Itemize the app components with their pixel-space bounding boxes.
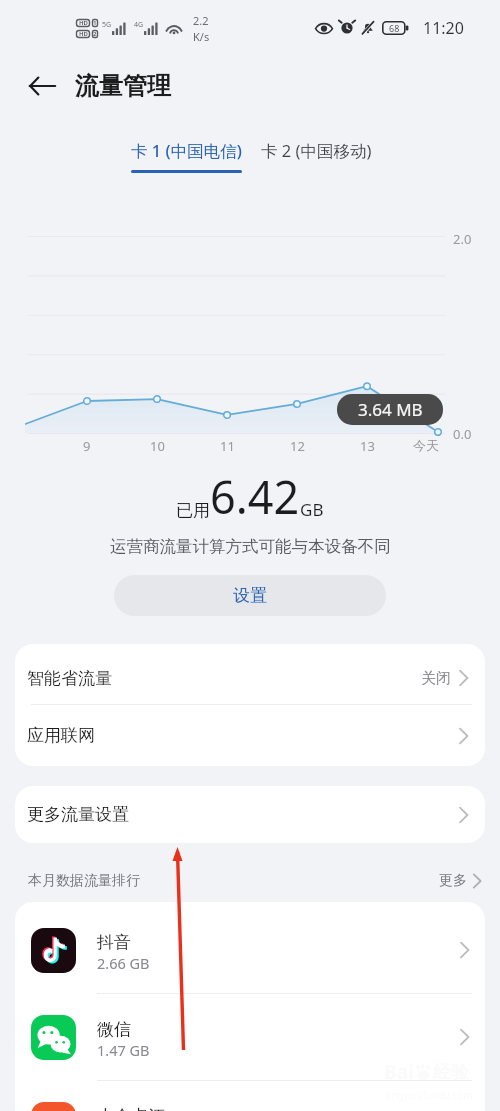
staticText: 12 [290, 437, 305, 455]
staticText: 2.2 [193, 13, 209, 28]
staticText: 68 [389, 22, 400, 34]
staticText: 10 [150, 437, 165, 455]
staticText: 流量管理 [75, 71, 171, 101]
staticText: 设置 [233, 585, 267, 606]
staticText: 4G [134, 20, 144, 30]
staticText: 2.66 GB [97, 953, 150, 973]
staticText: 关闭 [421, 669, 451, 688]
button[interactable]: Back [20, 64, 64, 108]
button[interactable]: 微信 [15, 994, 485, 1080]
staticText: 本月数据流量排行 [28, 872, 140, 890]
staticText: 1.47 GB [97, 1040, 150, 1060]
button[interactable]: 抖音 [15, 907, 485, 993]
staticText: 应用联网 [27, 725, 95, 746]
button[interactable]: 应用联网 [15, 705, 485, 766]
staticText: 13 [360, 437, 375, 455]
staticText: Bai [384, 1059, 414, 1085]
staticText: 经验 [433, 1061, 469, 1084]
staticText: K/s [193, 29, 210, 44]
staticText: 1 [93, 19, 97, 27]
staticText: 已用 [176, 500, 210, 521]
staticText: 抖音 [97, 932, 131, 953]
button[interactable]: 卡 2 (中国移动) [261, 139, 372, 162]
button[interactable]: 智能省流量 [15, 644, 485, 704]
staticText: 更多 [439, 872, 467, 890]
staticText: 今天 [413, 437, 439, 453]
staticText: 6.42 [210, 466, 300, 527]
staticText: 微信 [97, 1019, 131, 1040]
staticText: 2 [93, 30, 97, 38]
staticText: 2.0 [453, 230, 472, 248]
staticText: HD [79, 30, 88, 38]
staticText: 智能省流量 [27, 668, 112, 689]
staticText: 11:20 [423, 17, 464, 39]
staticText: HD [79, 19, 88, 27]
staticText: 0.0 [453, 425, 472, 443]
button[interactable]: 卡 1 (中国电信) [131, 139, 242, 173]
staticText: 大众点评 [97, 1106, 165, 1111]
staticText: 更多流量设置 [27, 804, 129, 825]
staticText: GB [300, 498, 324, 521]
button[interactable]: 更多流量设置 [15, 786, 485, 843]
staticText: 运营商流量计算方式可能与本设备不同 [110, 536, 391, 557]
staticText: 11 [220, 437, 235, 455]
staticText: 卡 2 (中国移动) [261, 139, 372, 162]
staticText: 3.64 MB [358, 398, 423, 421]
button[interactable]: 设置 [114, 575, 386, 616]
button[interactable]: 大众点评 [15, 1081, 485, 1111]
staticText: 5G [102, 20, 112, 30]
staticText: 9 [83, 437, 91, 455]
staticText: 卡 1 (中国电信) [131, 139, 242, 162]
button[interactable]: 更多 [437, 872, 484, 890]
